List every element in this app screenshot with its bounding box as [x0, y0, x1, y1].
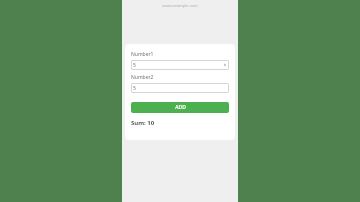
staticText: 5	[133, 62, 136, 69]
staticText: 5	[133, 85, 136, 92]
staticText: Sum: 10	[131, 119, 155, 127]
button[interactable]: 5	[131, 60, 229, 70]
staticText: www.example.com	[162, 3, 198, 8]
button[interactable]: 5	[131, 83, 229, 93]
staticText: ADD	[175, 104, 186, 111]
button[interactable]: ADD	[131, 102, 229, 113]
staticText: Number1	[131, 51, 154, 58]
staticText: Number2	[131, 74, 154, 81]
